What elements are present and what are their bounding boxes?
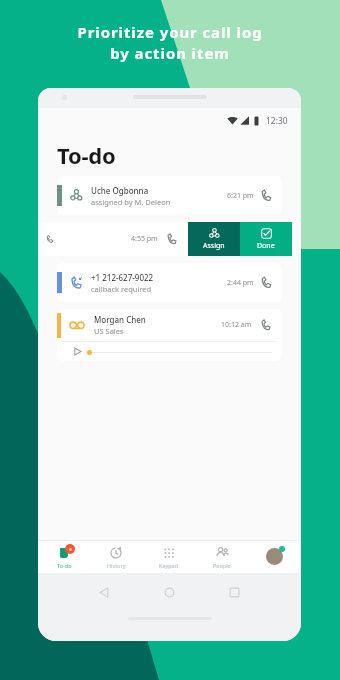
staticText: 4:55 pm	[131, 234, 158, 244]
button[interactable]: Assign	[188, 222, 240, 256]
button[interactable]: Morgan Chen	[57, 309, 282, 361]
button[interactable]: Back	[99, 587, 110, 598]
button[interactable]: Keypad	[142, 541, 195, 573]
button[interactable]: History	[90, 541, 142, 573]
button[interactable]: People	[195, 541, 248, 573]
button[interactable]: Home	[164, 587, 175, 598]
staticText: 12:30	[266, 115, 288, 127]
staticText: History	[107, 562, 126, 569]
staticText: Assign	[203, 241, 225, 251]
button[interactable]: Recents	[229, 587, 240, 598]
staticText: To-do	[57, 140, 116, 170]
button[interactable]: +1 212-627-9022	[57, 263, 282, 302]
button[interactable]: Done	[240, 222, 292, 256]
button[interactable]: To-do	[38, 541, 90, 573]
staticText: Keypad	[159, 562, 179, 569]
staticText: Morgan Chen	[94, 314, 146, 325]
staticText: Uche Ogbonna	[91, 185, 149, 196]
staticText: by action item	[110, 43, 230, 63]
staticText: To-do	[57, 562, 72, 569]
button[interactable]: Uche Ogbonna	[57, 176, 282, 215]
staticText: 10:12 am	[221, 320, 252, 330]
staticText: Prioritize your call log	[77, 22, 263, 42]
staticText: 2:44 pm	[227, 278, 254, 288]
staticText: +1 212-627-9022	[91, 272, 154, 283]
staticText: 6:21 pm	[227, 191, 254, 201]
staticText: People	[213, 562, 231, 569]
staticText: callback required	[91, 284, 152, 294]
staticText: US Sales	[94, 326, 124, 336]
button[interactable]: Profile	[248, 541, 301, 573]
staticText: assigned by M. Deleon	[91, 197, 171, 207]
staticText: Done	[257, 241, 275, 251]
